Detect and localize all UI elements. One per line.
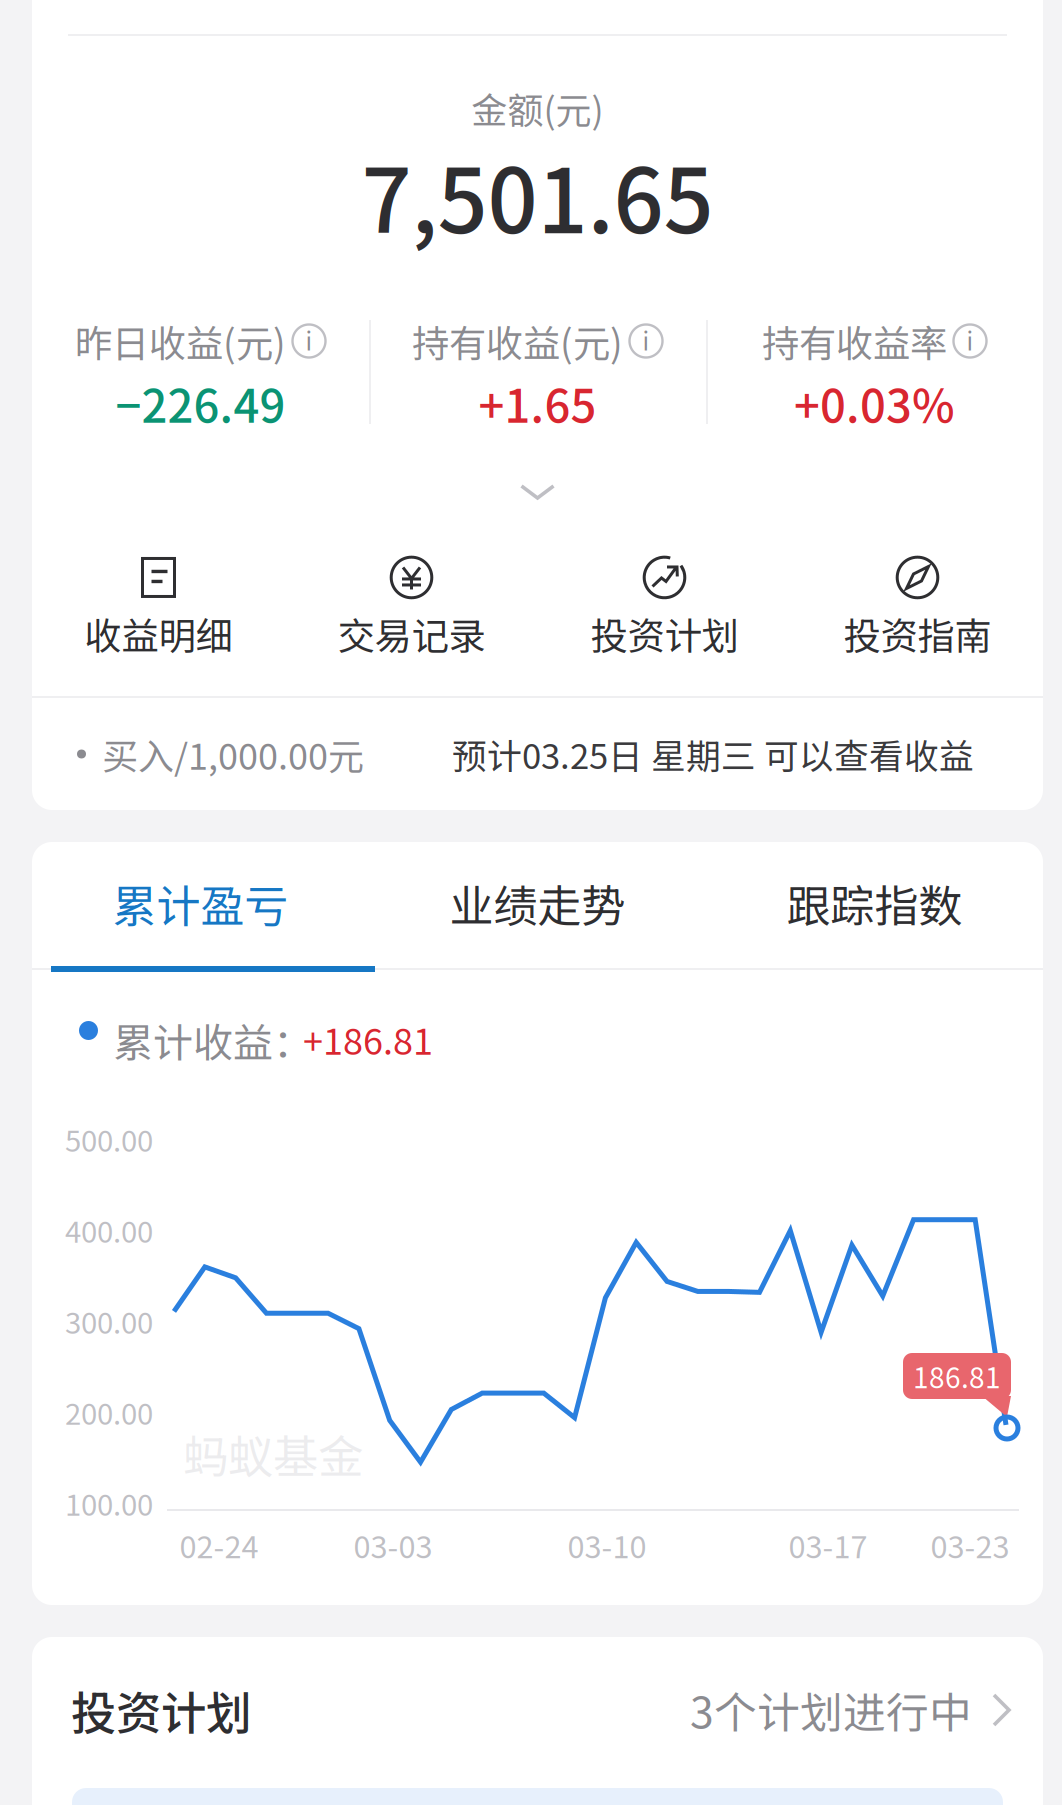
staticText: 买入/1,000.00元 (102, 728, 364, 780)
staticText: 累计盈亏 (112, 871, 288, 935)
staticText: 投资指南 (843, 606, 991, 661)
staticText: i (966, 323, 973, 357)
staticText: +186.81 (303, 1013, 433, 1065)
staticText: 3个计划进行中 (690, 1679, 972, 1741)
staticText: 400.00 (65, 1209, 153, 1251)
button[interactable]: 收益明细 (32, 549, 285, 665)
staticText: 100.00 (65, 1482, 153, 1524)
staticText: 投资计划 (590, 606, 738, 661)
staticText: 200.00 (65, 1391, 153, 1433)
staticText: 交易记录 (337, 606, 485, 661)
staticText: 投资计划 (71, 1677, 251, 1743)
staticText: 300.00 (65, 1300, 153, 1342)
button[interactable]: 投资计划 (32, 1645, 1043, 1775)
staticText: 昨日收益(元) (75, 314, 286, 368)
staticText: 跟踪指数 (786, 871, 962, 935)
staticText: 03-10 (567, 1523, 646, 1567)
button[interactable]: 跟踪指数 (706, 850, 1043, 956)
button[interactable]: 业绩走势 (369, 850, 706, 956)
button[interactable]: 交易记录 (285, 549, 538, 665)
staticText: 03-17 (788, 1523, 867, 1567)
staticText: 收益明细 (84, 606, 232, 661)
staticText: i (642, 323, 649, 357)
staticText: +1.65 (478, 370, 596, 436)
button[interactable]: 买入/1,000.00元 (32, 698, 1043, 810)
staticText: 蚂蚁基金 (183, 1421, 363, 1487)
staticText: 186.81 (913, 1356, 1001, 1396)
staticText: −226.49 (115, 370, 285, 436)
staticText: 7,501.65 (361, 131, 713, 259)
button[interactable]: 累计盈亏 (32, 850, 369, 956)
staticText: i (305, 323, 312, 357)
staticText: 持有收益率 (762, 314, 947, 368)
staticText: 累计收益： (113, 1011, 313, 1069)
staticText: 03-03 (353, 1523, 432, 1567)
staticText: 03-23 (930, 1523, 1009, 1567)
staticText: 业绩走势 (449, 871, 625, 935)
staticText: 持有收益(元) (412, 314, 623, 368)
button[interactable]: 投资指南 (791, 549, 1044, 665)
staticText: 预计03.25日 星期三 可以查看收益 (452, 729, 974, 779)
button[interactable]: 投资计划 (538, 549, 791, 665)
staticText: 02-24 (179, 1523, 258, 1567)
staticText: 金额(元) (471, 82, 603, 134)
button[interactable]: 展开更多 (32, 470, 1043, 514)
staticText: +0.03% (794, 370, 955, 436)
staticText: 500.00 (65, 1118, 153, 1160)
